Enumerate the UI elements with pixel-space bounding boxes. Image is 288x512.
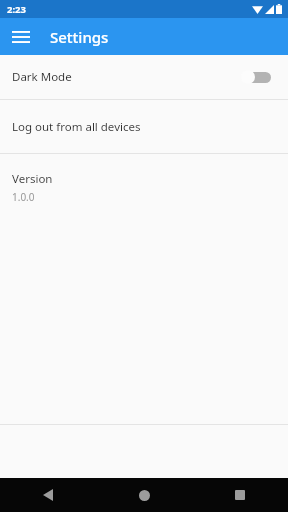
- staticText: Settings: [50, 27, 109, 47]
- button[interactable]: Dark Mode: [0, 55, 288, 99]
- button[interactable]: Log out from all devices: [0, 100, 288, 153]
- button[interactable]: Version: [0, 154, 288, 218]
- staticText: 2:23: [7, 3, 26, 16]
- staticText: Log out from all devices: [12, 119, 141, 135]
- staticText: Dark Mode: [12, 69, 241, 85]
- staticText: 1.0.0: [12, 190, 35, 204]
- staticText: Version: [12, 171, 53, 187]
- button[interactable]: Home: [96, 478, 192, 512]
- button[interactable]: Dark Mode switch, off: [241, 69, 271, 85]
- button[interactable]: Recent apps: [192, 478, 288, 512]
- button[interactable]: Back: [0, 478, 96, 512]
- button[interactable]: Open navigation menu: [6, 22, 36, 52]
